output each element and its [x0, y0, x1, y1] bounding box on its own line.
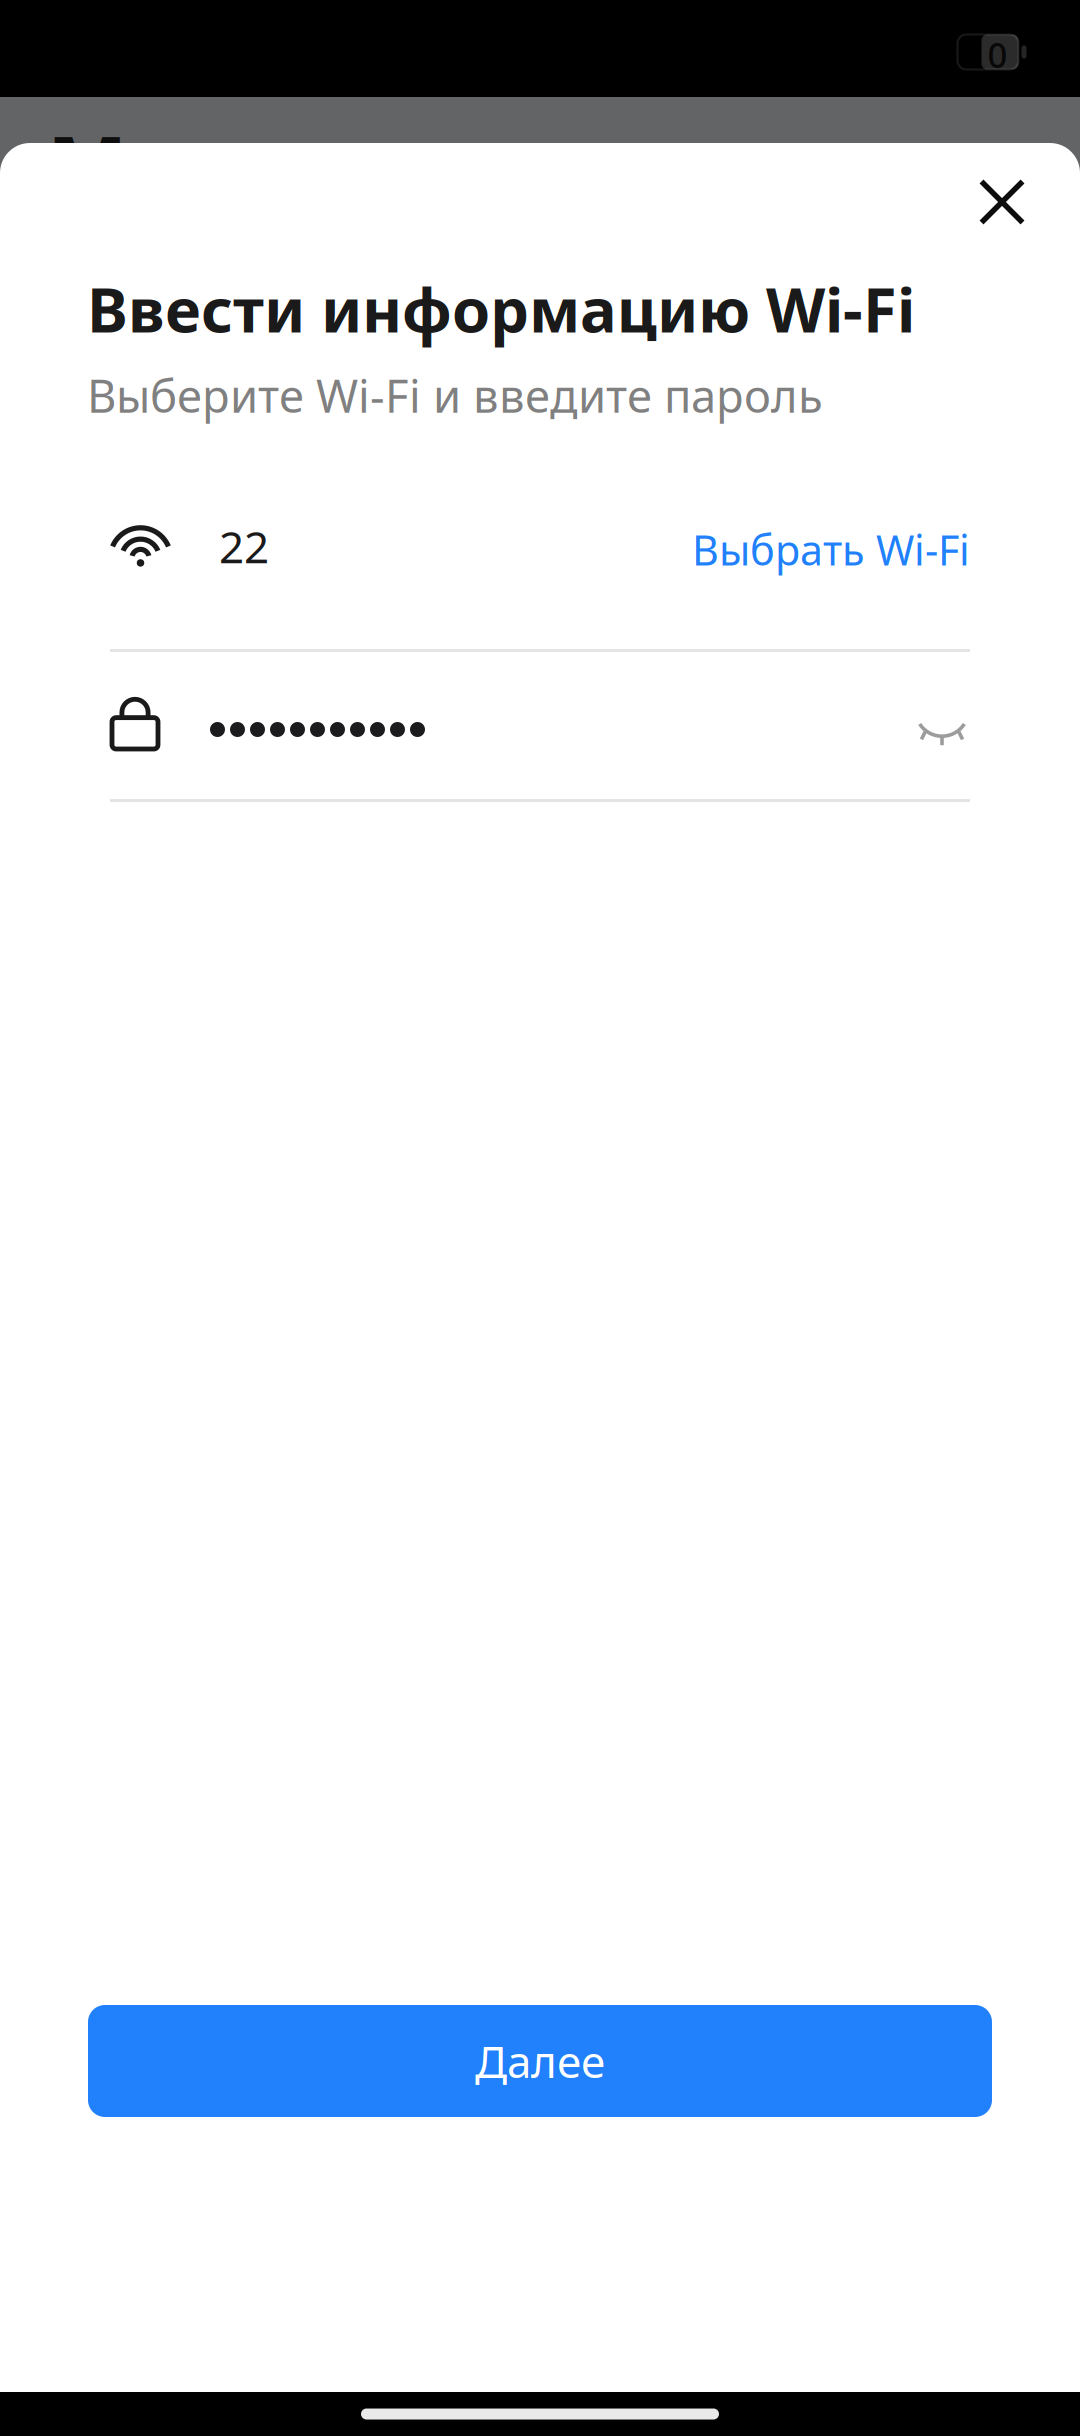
button[interactable]: Close — [952, 152, 1052, 252]
button[interactable]: Далее — [88, 2005, 992, 2117]
staticText: 0 — [987, 31, 1007, 77]
staticText: Ввести информацию Wi-Fi — [87, 268, 915, 349]
staticText: Выберите Wi-Fi и введите пароль — [87, 365, 823, 425]
button[interactable]: 22 — [110, 473, 970, 649]
button[interactable]: Show password — [882, 680, 1002, 770]
staticText: Далее — [475, 2032, 605, 2090]
staticText: Выбрать Wi-Fi — [692, 522, 970, 577]
staticText: М — [47, 109, 127, 222]
staticText: 22 — [219, 517, 269, 575]
